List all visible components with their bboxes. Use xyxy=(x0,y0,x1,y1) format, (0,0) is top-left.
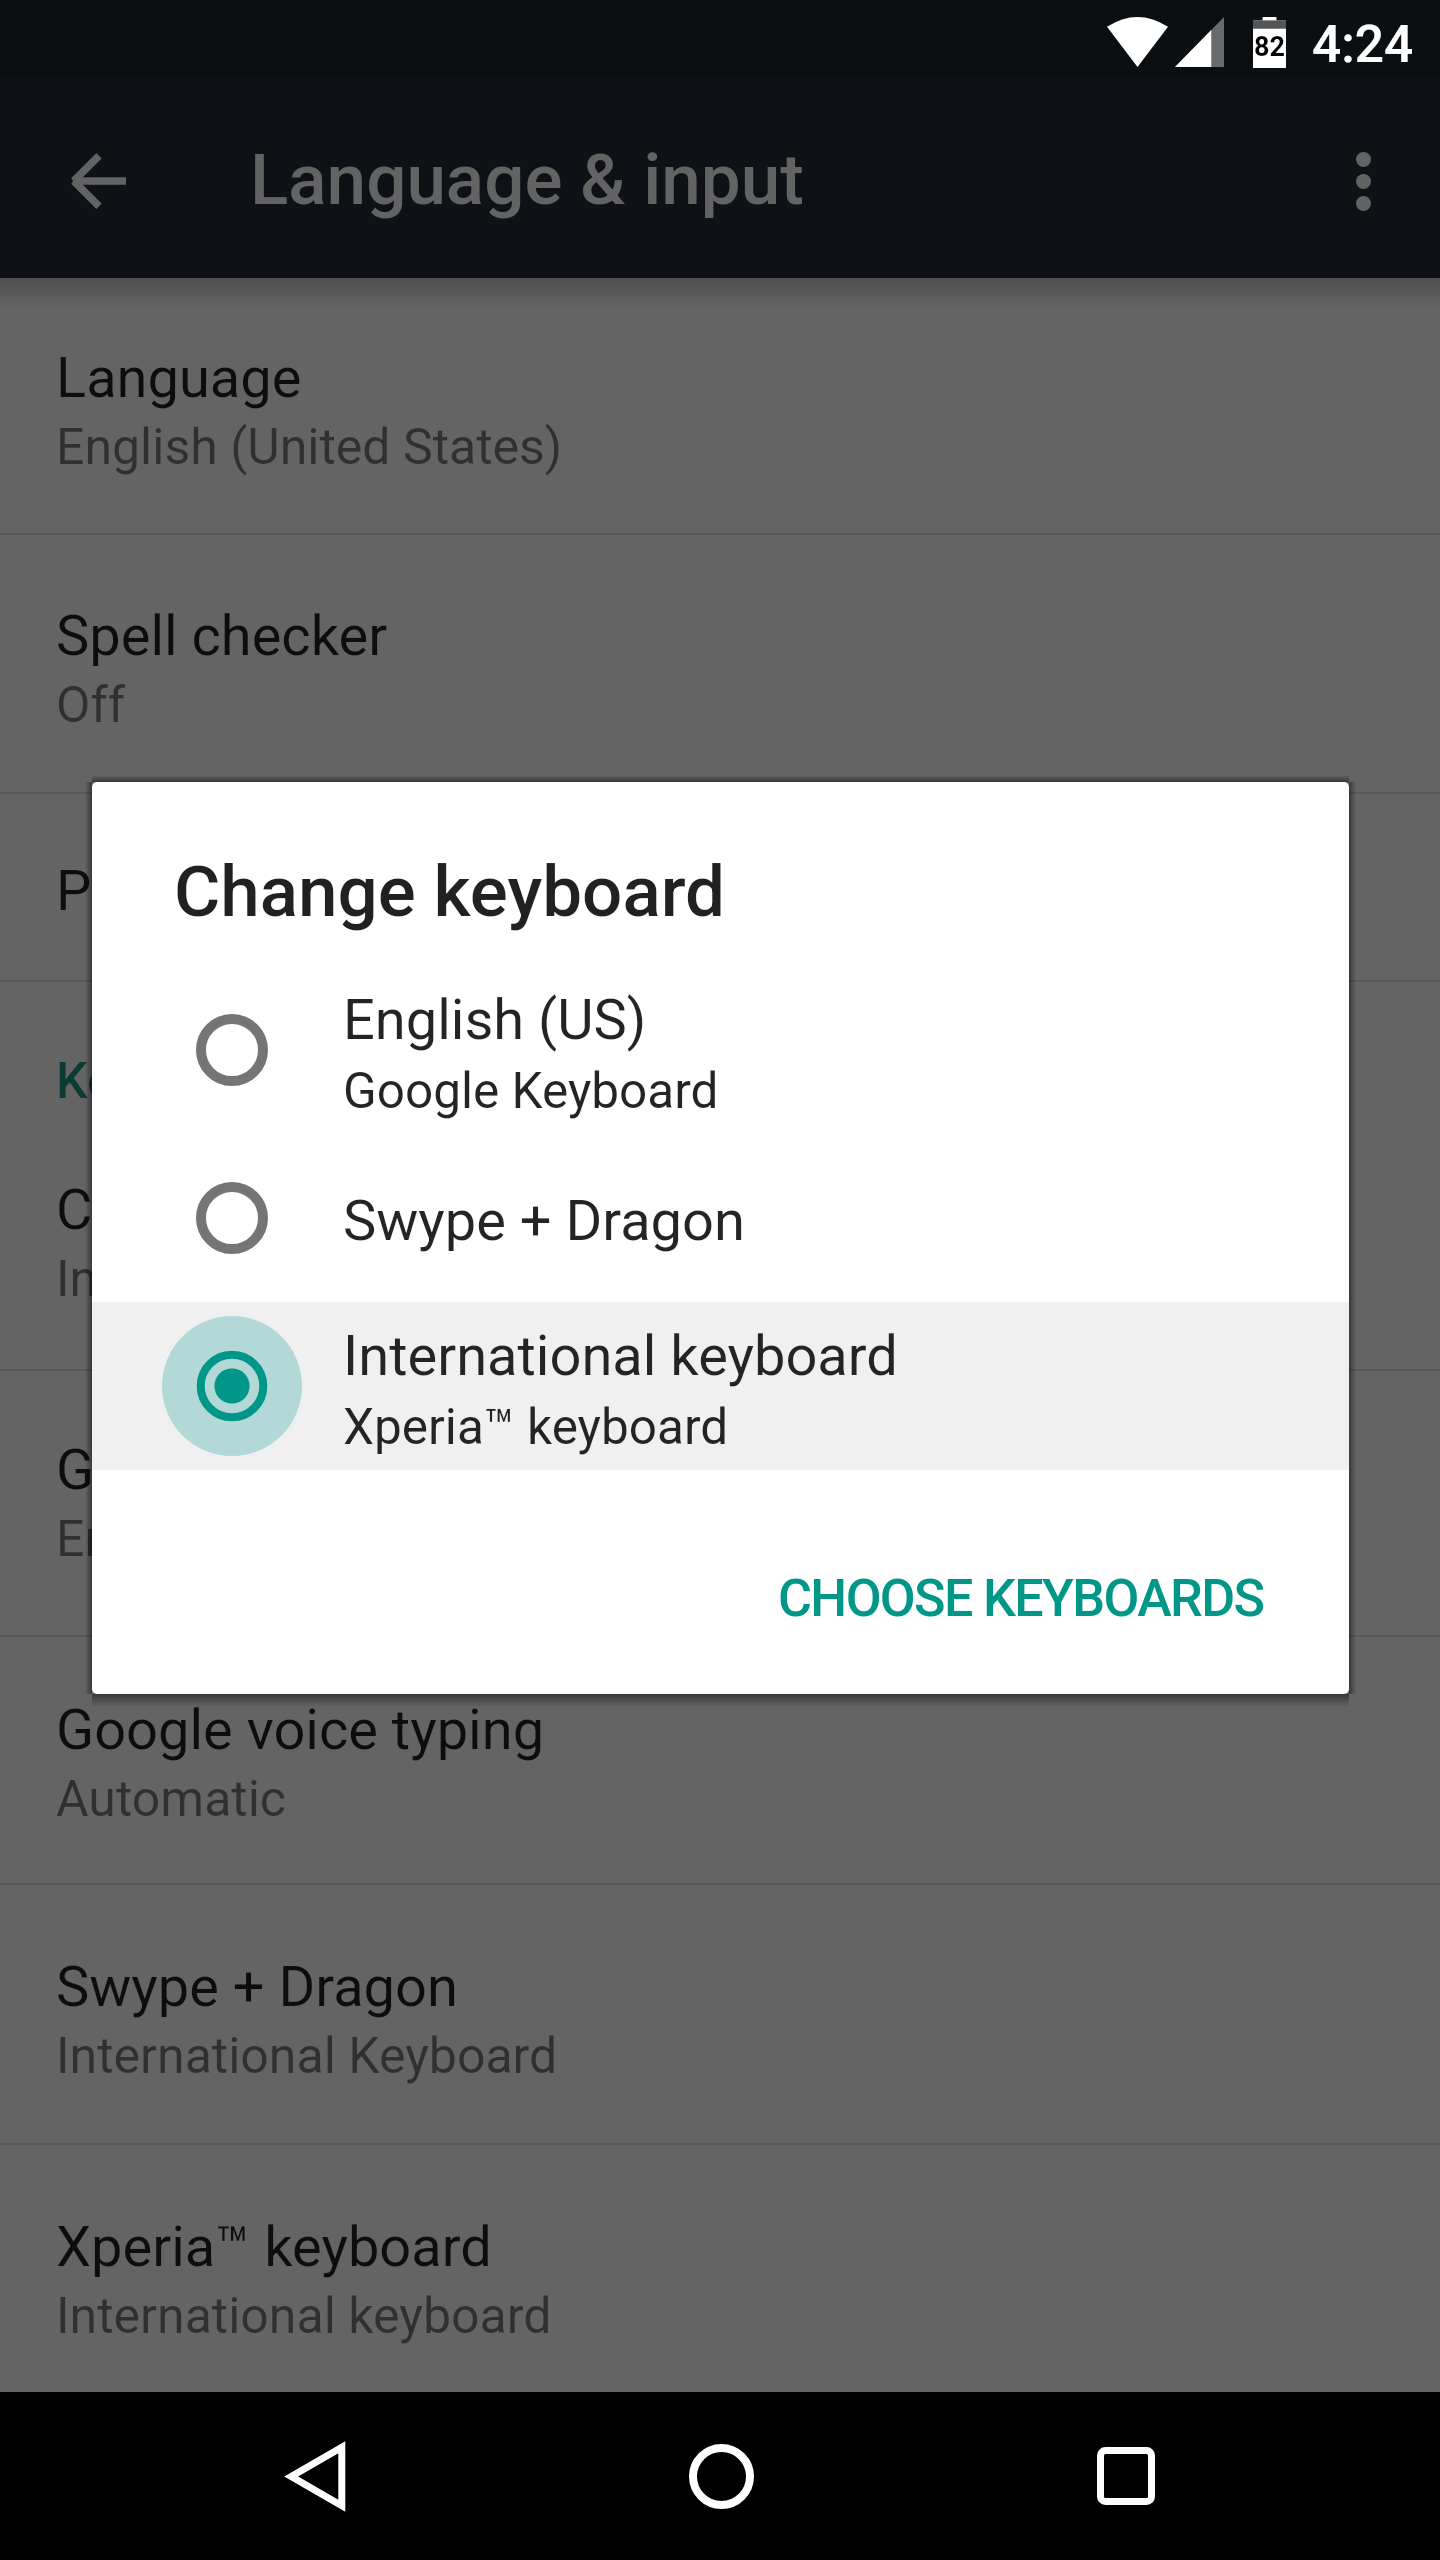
staticText: Off xyxy=(56,676,126,735)
staticText: 82 xyxy=(1254,31,1285,63)
staticText: Current Keyboard xyxy=(56,1177,488,1243)
staticText: Keyboard & input methods xyxy=(56,1052,647,1111)
staticText: International keyboard xyxy=(343,1323,898,1389)
staticText: International keyboard xyxy=(56,2287,552,2346)
staticText: Swype + Dragon xyxy=(56,1954,458,2020)
button[interactable]: Swype + Dragon xyxy=(0,1885,1440,2143)
button[interactable]: International keyboard xyxy=(92,1302,1349,1470)
staticText: Automatic xyxy=(56,1770,287,1829)
staticText: Spell checker xyxy=(56,603,388,669)
button[interactable]: Back xyxy=(241,2401,391,2551)
staticText: English (US) xyxy=(343,987,647,1053)
button[interactable]: English (US) xyxy=(92,966,1349,1134)
staticText: Xperia™ keyboard xyxy=(343,1398,729,1456)
staticText: English (United States) xyxy=(56,418,563,477)
staticText: Google voice typing xyxy=(56,1697,545,1763)
button[interactable]: Xperia™ keyboard xyxy=(0,2145,1440,2392)
staticText: International keyboard xyxy=(56,1250,552,1309)
button[interactable]: Navigate up xyxy=(37,121,157,241)
button[interactable]: More options xyxy=(1308,126,1418,236)
button[interactable]: Personal dictionary xyxy=(0,794,1440,980)
button[interactable]: CHOOSE KEYBOARDS xyxy=(736,1544,1306,1652)
staticText: Change keyboard xyxy=(174,850,726,933)
staticText: Language & input xyxy=(250,138,804,221)
staticText: International Keyboard xyxy=(56,2027,558,2086)
button[interactable]: Spell checker xyxy=(0,535,1440,792)
staticText: Swype + Dragon xyxy=(343,1188,745,1254)
button[interactable]: Recent apps xyxy=(1051,2401,1201,2551)
button[interactable]: Home xyxy=(646,2401,796,2551)
staticText: 4:24 xyxy=(1312,14,1414,74)
button[interactable]: Google Keyboard xyxy=(0,1371,1440,1635)
staticText: English (US) xyxy=(56,1510,327,1569)
staticText: Google Keyboard xyxy=(56,1437,481,1503)
button[interactable]: Google voice typing xyxy=(0,1637,1440,1883)
button[interactable]: Language xyxy=(0,278,1440,533)
staticText: Language xyxy=(56,345,302,411)
staticText: CHOOSE KEYBOARDS xyxy=(778,1568,1264,1629)
button[interactable]: Current Keyboard xyxy=(0,1137,1440,1369)
staticText: Xperia™ keyboard xyxy=(56,2214,492,2280)
button[interactable]: Swype + Dragon xyxy=(92,1134,1349,1302)
staticText: Personal dictionary xyxy=(56,858,536,924)
staticText: Google Keyboard xyxy=(343,1062,719,1120)
